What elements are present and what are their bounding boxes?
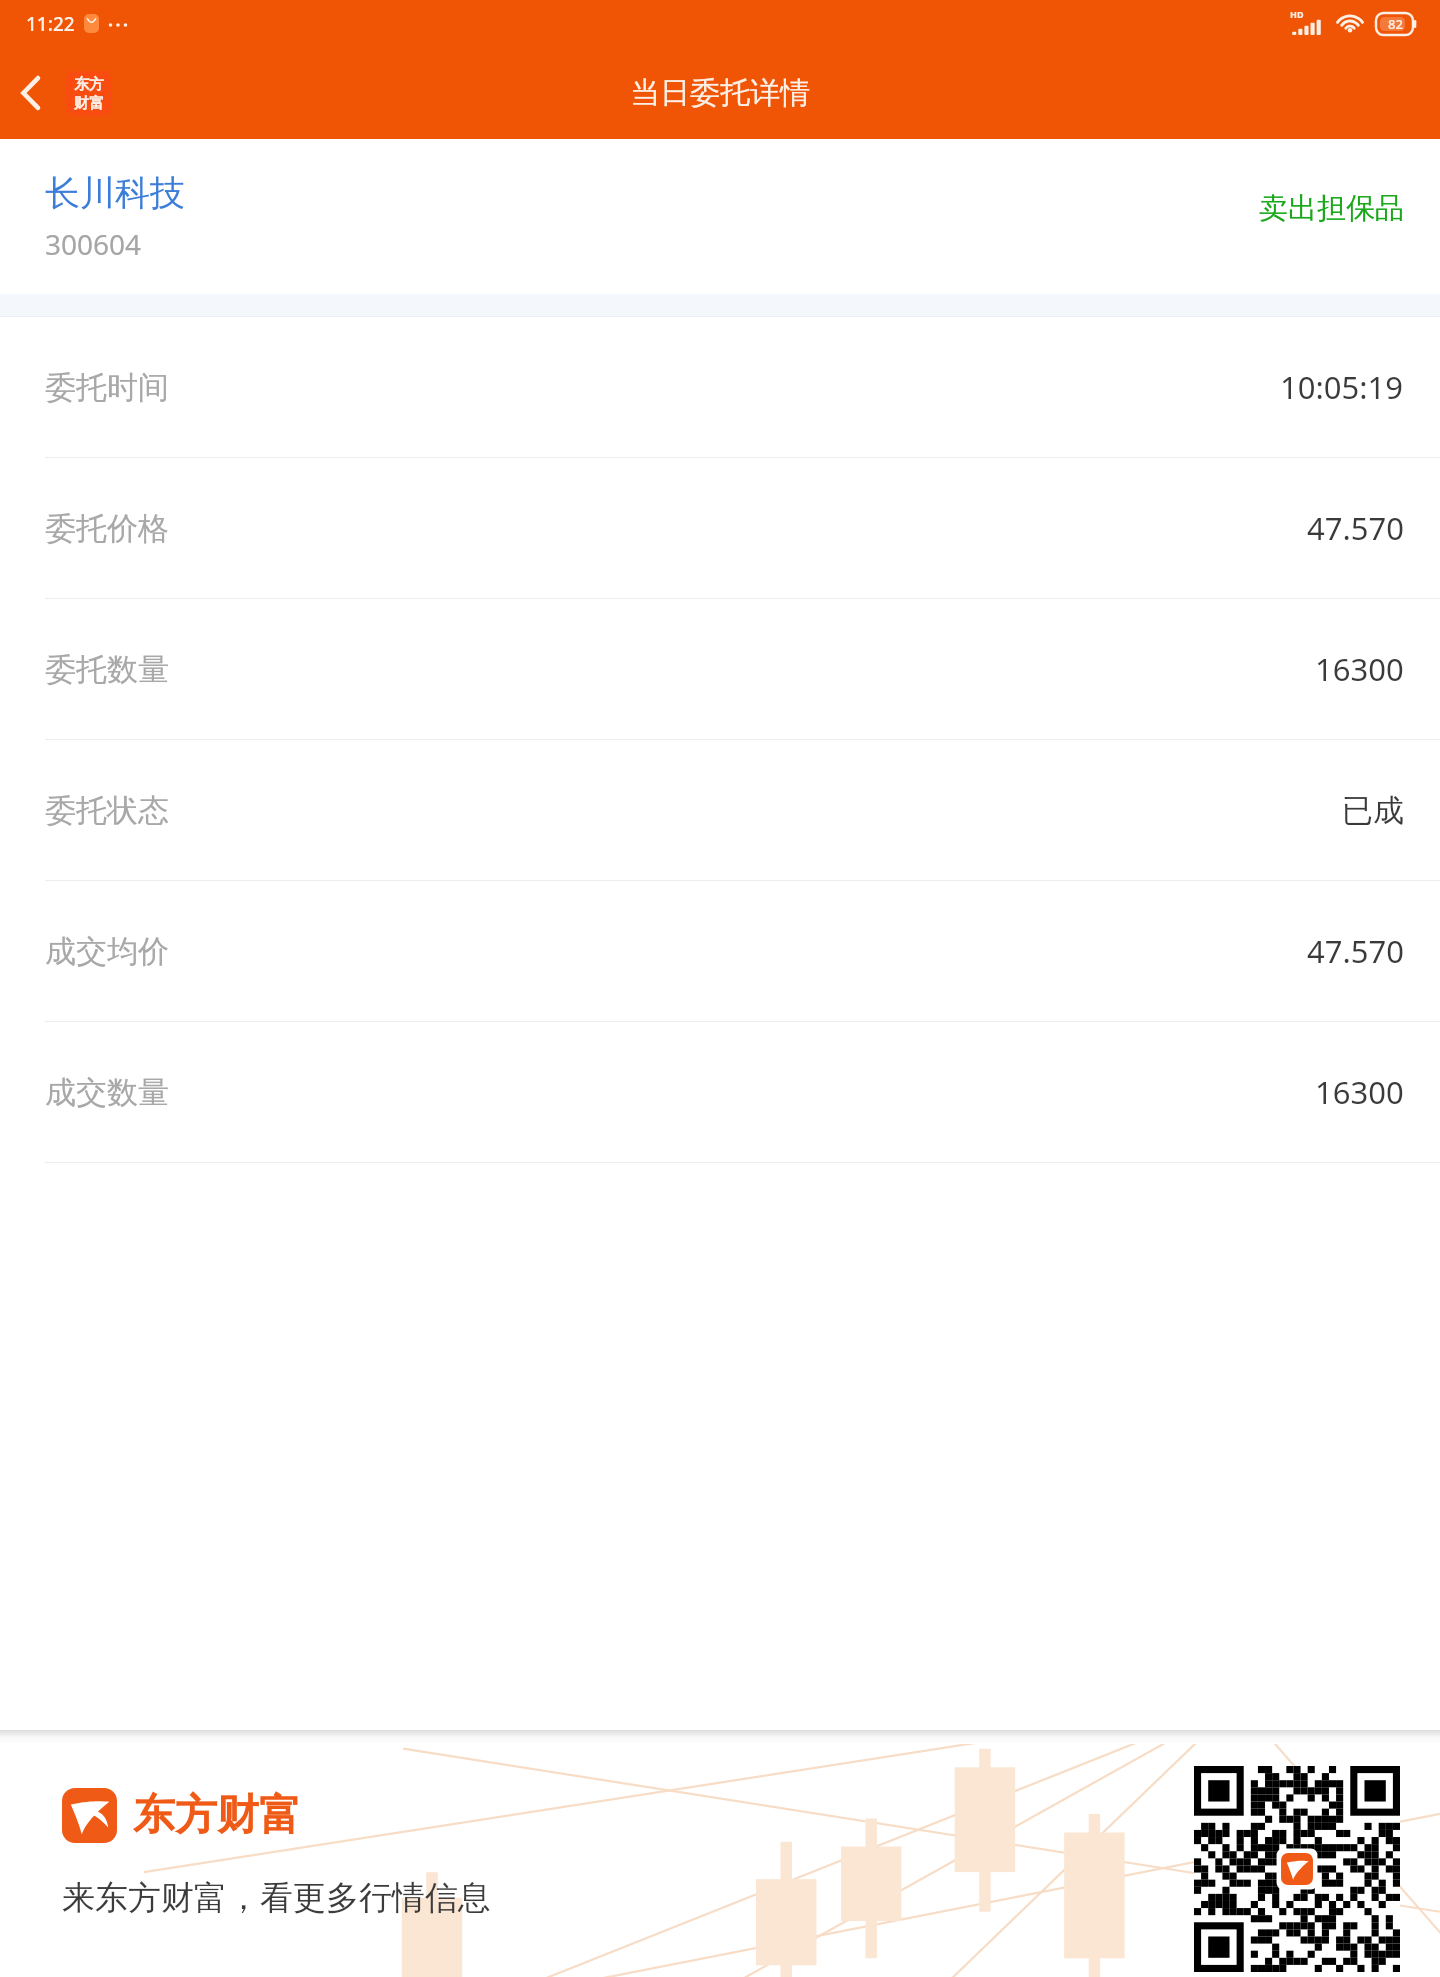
staticText: 16300 (1315, 1071, 1404, 1113)
staticText: 财富 (74, 94, 104, 113)
button[interactable]: 长川科技 (0, 139, 1440, 294)
button[interactable]: 委托价格 (0, 458, 1440, 599)
staticText: HD (1290, 8, 1304, 20)
staticText: 委托状态 (45, 791, 169, 830)
staticText: 成交均价 (45, 932, 169, 971)
staticText: 长川科技 (45, 171, 185, 215)
staticText: 委托数量 (45, 650, 169, 689)
staticText: 10:05:19 (1280, 366, 1404, 408)
staticText: 11:22 (26, 11, 75, 37)
staticText: 卖出担保品 (1259, 190, 1404, 227)
staticText: 当日委托详情 (630, 74, 810, 112)
staticText: 成交数量 (45, 1073, 169, 1112)
staticText: 82 (1388, 15, 1403, 33)
staticText: 47.570 (1307, 507, 1404, 549)
button[interactable]: Back (0, 62, 62, 124)
button[interactable]: 委托状态 (0, 740, 1440, 881)
staticText: 委托时间 (45, 368, 169, 407)
staticText: 16300 (1315, 648, 1404, 690)
staticText: 东方财富 (133, 1789, 301, 1842)
staticText: 300604 (45, 225, 142, 263)
staticText: 委托价格 (45, 509, 169, 548)
button[interactable]: 委托时间 (0, 317, 1440, 458)
staticText: 来东方财富，看更多行情信息 (62, 1877, 491, 1919)
button[interactable]: East Money home (66, 71, 111, 116)
button[interactable]: 成交数量 (0, 1022, 1440, 1163)
staticText: 47.570 (1307, 930, 1404, 972)
button[interactable]: 成交均价 (0, 881, 1440, 1022)
staticText: 已成 (1342, 791, 1404, 830)
button[interactable]: 委托数量 (0, 599, 1440, 740)
staticText: 东方 (74, 75, 104, 94)
